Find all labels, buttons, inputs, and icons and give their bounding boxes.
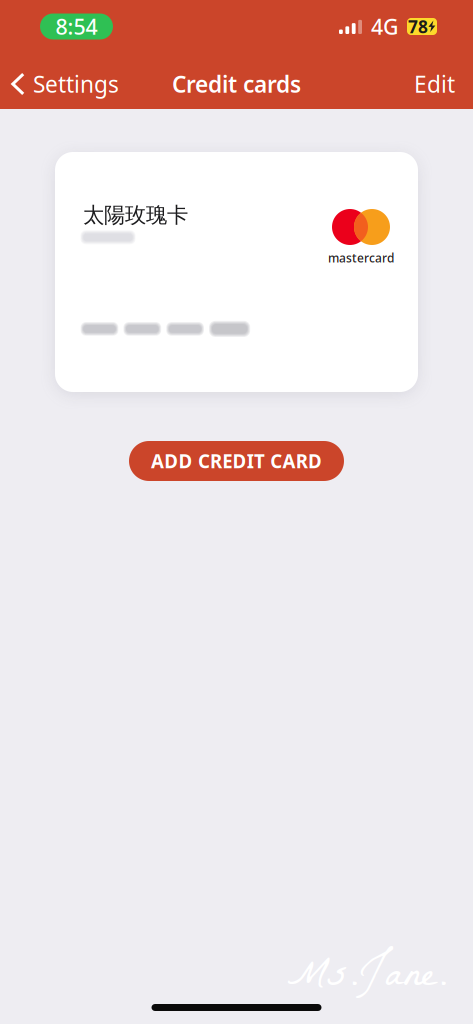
staticText: Credit cards [172,69,301,99]
staticText: 78 [408,15,428,38]
staticText: 4G [371,12,399,41]
staticText: Ms.Jane. [287,939,447,1018]
staticText: Settings [33,69,119,99]
button[interactable]: Settings [0,62,129,106]
button[interactable]: Edit [396,62,473,106]
button[interactable]: ADD CREDIT CARD [129,441,344,481]
staticText: ADD CREDIT CARD [151,449,322,473]
staticText: mastercard [328,250,394,266]
staticText: 太陽玫瑰卡 [83,202,188,228]
staticText: 8:54 [55,12,97,41]
staticText: Edit [414,69,455,99]
